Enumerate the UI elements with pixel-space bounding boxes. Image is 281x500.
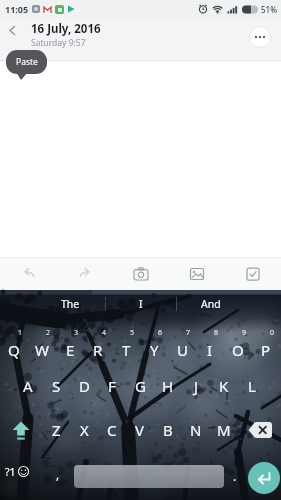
button[interactable] xyxy=(113,257,169,290)
staticText: C xyxy=(107,420,117,440)
staticText: 5 xyxy=(130,328,135,338)
button[interactable] xyxy=(57,257,113,290)
staticText: And xyxy=(201,297,221,311)
staticText: 6 xyxy=(158,328,163,338)
staticText: 9 xyxy=(242,328,247,338)
button[interactable] xyxy=(249,26,271,48)
staticText: H xyxy=(162,376,174,396)
staticText: I xyxy=(207,340,213,360)
button[interactable]: G xyxy=(126,365,154,410)
button[interactable]: V xyxy=(126,410,154,455)
staticText: A xyxy=(23,376,33,396)
staticText: The xyxy=(61,297,80,311)
staticText: 51% xyxy=(261,4,277,15)
button[interactable]: F xyxy=(98,365,126,410)
button[interactable] xyxy=(0,257,57,290)
button[interactable]: 0 xyxy=(252,318,280,365)
button[interactable]: ?1 xyxy=(0,455,46,500)
button[interactable]: Z xyxy=(42,410,70,455)
button[interactable]: 16 July, 2016 xyxy=(31,21,101,49)
button[interactable]: K xyxy=(210,365,238,410)
button[interactable]: N xyxy=(182,410,210,455)
staticText: L xyxy=(248,376,256,396)
staticText: J xyxy=(194,376,199,396)
staticText: F xyxy=(108,376,116,396)
staticText: Saturday 9:57 xyxy=(31,37,86,49)
button[interactable] xyxy=(169,257,225,290)
button[interactable]: 1 xyxy=(0,318,28,365)
staticText: Q xyxy=(8,340,20,360)
button[interactable]: 8 xyxy=(196,318,224,365)
button[interactable]: B xyxy=(154,410,182,455)
button[interactable]: 7 xyxy=(168,318,196,365)
staticText: P xyxy=(261,340,271,360)
staticText: D xyxy=(79,376,90,396)
button[interactable]: J xyxy=(182,365,210,410)
staticText: X xyxy=(80,420,89,440)
button[interactable]: 2 xyxy=(28,318,56,365)
staticText: M xyxy=(217,420,231,440)
staticText: Paste xyxy=(16,56,38,68)
staticText: I xyxy=(139,297,143,311)
button[interactable]: Paste xyxy=(6,50,47,74)
button[interactable]: And xyxy=(176,290,246,318)
staticText: O xyxy=(232,340,244,360)
staticText: V xyxy=(135,420,145,440)
button[interactable]: 3 xyxy=(56,318,84,365)
button[interactable]: The xyxy=(35,290,105,318)
staticText: 16 July, 2016 xyxy=(31,21,101,37)
button[interactable]: A xyxy=(14,365,42,410)
button[interactable]: . xyxy=(228,455,242,500)
button[interactable]: X xyxy=(70,410,98,455)
staticText: 2 xyxy=(46,328,51,338)
button[interactable] xyxy=(242,455,281,500)
staticText: ?1 xyxy=(5,465,16,479)
staticText: 4 xyxy=(102,328,107,338)
button[interactable]: 4 xyxy=(84,318,112,365)
staticText: U xyxy=(177,340,188,360)
staticText: Z xyxy=(52,420,61,440)
button[interactable] xyxy=(0,410,42,455)
staticText: 7 xyxy=(186,328,191,338)
button[interactable]: H xyxy=(154,365,182,410)
button[interactable]: L xyxy=(238,365,266,410)
button[interactable]: S xyxy=(42,365,70,410)
staticText: E xyxy=(66,340,75,360)
staticText: B xyxy=(163,420,173,440)
button[interactable]: D xyxy=(70,365,98,410)
button[interactable] xyxy=(225,257,281,290)
staticText: , xyxy=(56,466,60,482)
staticText: G xyxy=(135,376,146,396)
button[interactable] xyxy=(238,410,281,455)
staticText: 3 xyxy=(74,328,79,338)
button[interactable]: M xyxy=(210,410,238,455)
button[interactable]: I xyxy=(105,290,176,318)
staticText: . xyxy=(233,468,237,484)
staticText: 1 xyxy=(18,328,23,338)
staticText: R xyxy=(93,340,103,360)
button[interactable]: , xyxy=(46,455,70,500)
button[interactable] xyxy=(70,455,228,500)
staticText: K xyxy=(219,376,229,396)
staticText: 8 xyxy=(214,328,219,338)
button[interactable]: C xyxy=(98,410,126,455)
staticText: S xyxy=(52,376,61,396)
staticText: T xyxy=(122,340,131,360)
button[interactable]: 9 xyxy=(224,318,252,365)
staticText: W xyxy=(35,340,49,360)
staticText: 11:05 xyxy=(5,3,29,15)
staticText: N xyxy=(190,420,202,440)
staticText: 0 xyxy=(270,328,275,338)
button[interactable]: 5 xyxy=(112,318,140,365)
button[interactable]: 6 xyxy=(140,318,168,365)
staticText: Y xyxy=(150,340,159,360)
